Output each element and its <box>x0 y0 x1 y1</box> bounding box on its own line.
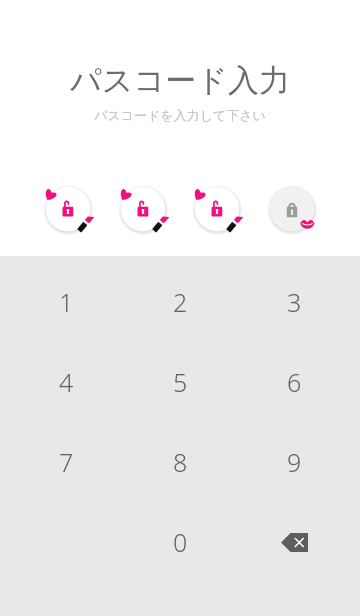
staticText: 3 <box>287 285 302 319</box>
button[interactable]: Backspace <box>237 502 351 582</box>
staticText: パスコードを入力して下さい <box>94 107 266 123</box>
staticText: 6 <box>287 365 302 399</box>
staticText: 1 <box>59 285 74 319</box>
button[interactable]: 8 <box>123 422 237 502</box>
button[interactable]: 1 <box>9 262 123 342</box>
button[interactable]: 0 <box>123 502 237 582</box>
button[interactable]: 7 <box>9 422 123 502</box>
staticText: 8 <box>173 445 188 479</box>
staticText: 5 <box>173 365 188 399</box>
staticText: 4 <box>59 365 74 399</box>
staticText: 7 <box>59 445 74 479</box>
button[interactable]: 5 <box>123 342 237 422</box>
button[interactable]: 2 <box>123 262 237 342</box>
staticText: 9 <box>287 445 302 479</box>
button[interactable]: 4 <box>9 342 123 422</box>
staticText: パスコード入力 <box>70 61 290 100</box>
staticText: 0 <box>173 525 188 559</box>
staticText: 2 <box>173 285 188 319</box>
button[interactable]: 3 <box>237 262 351 342</box>
other: Backspace <box>281 533 308 552</box>
button[interactable]: 9 <box>237 422 351 502</box>
button[interactable]: 6 <box>237 342 351 422</box>
